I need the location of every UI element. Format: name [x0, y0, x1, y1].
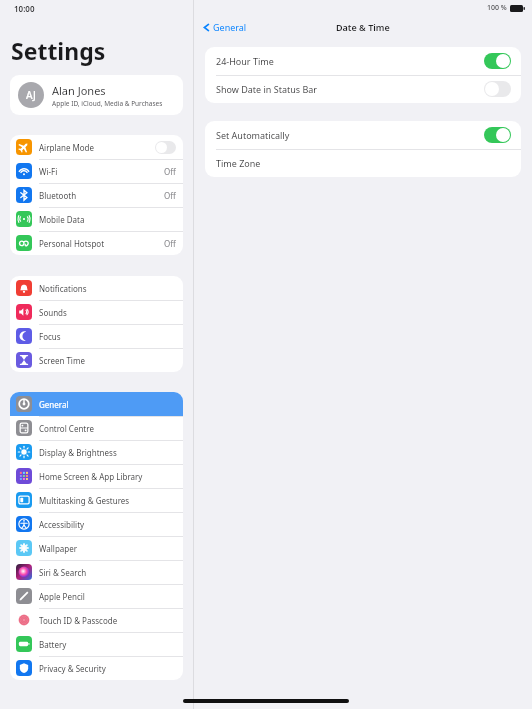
button[interactable]: Time Zone — [205, 149, 521, 177]
staticText: Privacy & Security — [39, 663, 106, 674]
staticText: 10:00 — [14, 3, 35, 14]
staticText: Touch ID & Passcode — [39, 615, 118, 626]
staticText: Show Date in Status Bar — [216, 83, 318, 95]
staticText: 100 % — [487, 3, 507, 13]
button[interactable]: General — [201, 19, 249, 35]
staticText: Screen Time — [39, 355, 85, 366]
staticText: Time Zone — [216, 157, 261, 169]
staticText: Accessibility — [39, 519, 85, 530]
button[interactable]: Toggle off — [155, 141, 176, 154]
staticText: General — [213, 21, 247, 33]
button[interactable]: Bluetooth — [10, 183, 183, 207]
button[interactable]: 24-Hour Time — [205, 47, 521, 75]
staticText: Home Screen & App Library — [39, 471, 143, 482]
staticText: Apple ID, iCloud, Media & Purchases — [52, 99, 163, 108]
button[interactable]: Notifications — [10, 276, 183, 300]
button[interactable]: Set Automatically — [205, 121, 521, 149]
staticText: Display & Brightness — [39, 447, 117, 458]
button[interactable]: Display & Brightness — [10, 440, 183, 464]
button[interactable]: Battery — [10, 632, 183, 656]
staticText: Off — [164, 166, 176, 177]
staticText: Off — [164, 190, 176, 201]
staticText: Sounds — [39, 307, 67, 318]
button[interactable]: Control Centre — [10, 416, 183, 440]
staticText: Date & Time — [336, 21, 390, 33]
button[interactable]: Focus — [10, 324, 183, 348]
staticText: 24-Hour Time — [216, 55, 274, 67]
button[interactable]: Airplane Mode — [10, 135, 183, 159]
staticText: Airplane Mode — [39, 142, 95, 153]
staticText: Settings — [11, 35, 106, 66]
staticText: Wi-Fi — [39, 166, 58, 177]
button[interactable]: Show Date in Status Bar — [205, 75, 521, 103]
staticText: Alan Jones — [52, 83, 106, 98]
button[interactable]: Home Screen & App Library — [10, 464, 183, 488]
button[interactable]: General — [10, 392, 183, 416]
staticText: Multitasking & Gestures — [39, 495, 130, 506]
staticText: Personal Hotspot — [39, 238, 105, 249]
button[interactable]: Wi-Fi — [10, 159, 183, 183]
button[interactable]: Toggle on — [484, 53, 511, 69]
button[interactable]: Toggle off — [484, 81, 511, 97]
staticText: Mobile Data — [39, 214, 85, 225]
staticText: Apple Pencil — [39, 591, 85, 602]
staticText: AJ — [26, 88, 36, 102]
staticText: Battery — [39, 639, 67, 650]
button[interactable]: Personal Hotspot — [10, 231, 183, 255]
button[interactable]: Mobile Data — [10, 207, 183, 231]
button[interactable]: Multitasking & Gestures — [10, 488, 183, 512]
staticText: Off — [164, 238, 176, 249]
staticText: Focus — [39, 331, 61, 342]
staticText: Control Centre — [39, 423, 94, 434]
button[interactable]: Privacy & Security — [10, 656, 183, 680]
staticText: Siri & Search — [39, 567, 87, 578]
staticText: Wallpaper — [39, 543, 78, 554]
button[interactable]: Siri & Search — [10, 560, 183, 584]
button[interactable]: Apple Pencil — [10, 584, 183, 608]
button[interactable]: Wallpaper — [10, 536, 183, 560]
button[interactable]: Accessibility — [10, 512, 183, 536]
staticText: Set Automatically — [216, 129, 290, 141]
staticText: Bluetooth — [39, 190, 77, 201]
staticText: General — [39, 399, 69, 410]
button[interactable]: AJ — [10, 75, 183, 115]
staticText: Notifications — [39, 283, 87, 294]
button[interactable]: Touch ID & Passcode — [10, 608, 183, 632]
button[interactable]: Screen Time — [10, 348, 183, 372]
button[interactable]: Sounds — [10, 300, 183, 324]
button[interactable]: Toggle on — [484, 127, 511, 143]
